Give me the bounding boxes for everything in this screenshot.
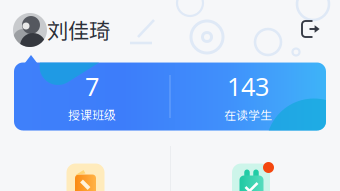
staticText: 7 <box>85 69 99 103</box>
staticText: 143 <box>227 69 269 103</box>
button[interactable]: 备课 <box>66 163 104 191</box>
staticText: 授课班级 <box>68 106 116 123</box>
button[interactable]: 退出登录 <box>301 20 321 38</box>
button[interactable]: 作业 <box>232 161 280 191</box>
staticText: 刘佳琦 <box>47 14 110 45</box>
staticText: 在读学生 <box>224 106 272 123</box>
button[interactable]: 头像 <box>13 13 47 47</box>
